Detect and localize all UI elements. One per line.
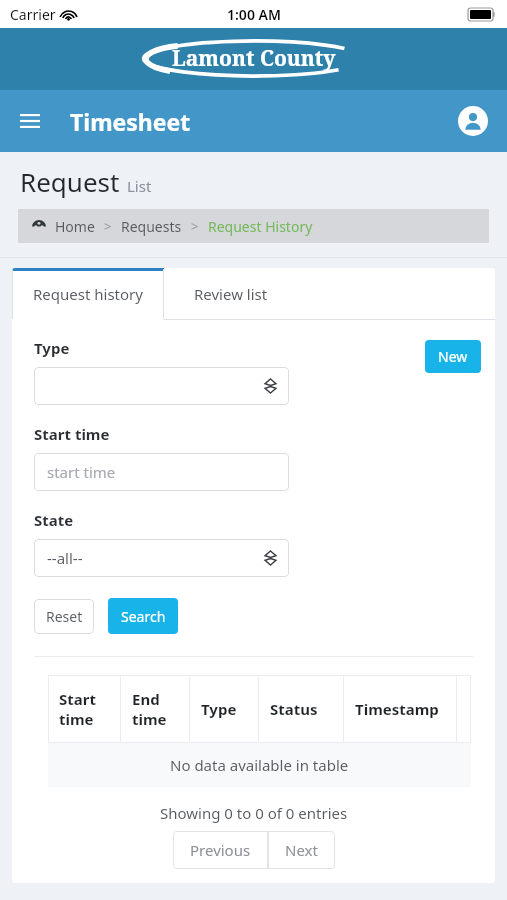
staticText: Reset (46, 607, 83, 626)
staticText: Start time (59, 689, 96, 729)
button[interactable]: Request history (12, 268, 164, 320)
staticText: Request (20, 164, 120, 199)
button[interactable]: Requests (121, 217, 182, 236)
staticText: Request history (33, 284, 143, 304)
button[interactable]: --all-- (34, 539, 289, 577)
button[interactable]: Next (268, 831, 335, 869)
staticText: Type (34, 338, 70, 358)
staticText: 1:00 AM (227, 5, 281, 24)
staticText: > (191, 217, 199, 235)
button[interactable]: Review list (164, 268, 298, 320)
staticText: No data available in table (170, 755, 349, 775)
button[interactable]: Reset (34, 599, 94, 634)
staticText: Carrier (10, 5, 56, 24)
staticText: Request History (208, 217, 313, 236)
button[interactable]: Menu (8, 99, 52, 143)
staticText: Search (121, 607, 166, 626)
button[interactable]: Account (453, 101, 493, 141)
staticText: --all-- (47, 548, 83, 568)
button[interactable]: Previous (173, 831, 268, 869)
staticText: Status (270, 699, 318, 719)
staticText: Lamont County (172, 44, 336, 73)
button[interactable]: New (425, 340, 481, 373)
staticText: New (438, 347, 468, 366)
staticText: > (104, 217, 112, 235)
button[interactable]: Search (108, 598, 178, 634)
staticText: Timesheet (70, 106, 191, 137)
staticText: start time (47, 462, 116, 482)
button[interactable]: Home (55, 217, 95, 236)
staticText: Previous (190, 840, 251, 860)
staticText: Timestamp (355, 699, 439, 719)
staticText: Start time (34, 424, 110, 444)
staticText: List (127, 176, 152, 196)
staticText: End time (132, 689, 167, 729)
staticText: Type (201, 699, 237, 719)
button[interactable]: start time (34, 453, 289, 491)
staticText: Review list (194, 284, 268, 304)
button[interactable] (34, 367, 289, 405)
staticText: Showing 0 to 0 of 0 entries (160, 803, 348, 823)
staticText: State (34, 510, 74, 530)
staticText: Next (285, 840, 318, 860)
